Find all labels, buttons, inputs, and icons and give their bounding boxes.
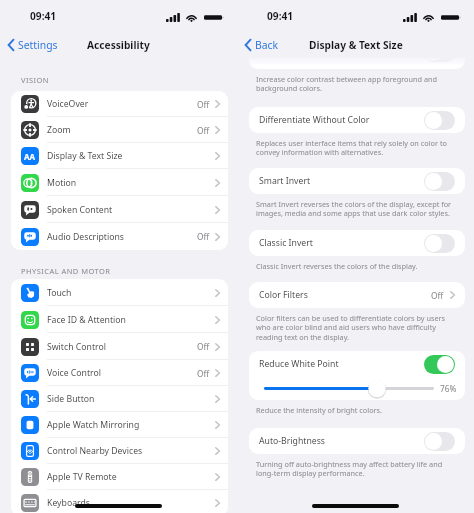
staticText: Classic Invert	[259, 237, 424, 249]
staticText: Differentiate Without Color	[259, 114, 424, 126]
staticText: Settings	[18, 38, 58, 52]
staticText: Off	[197, 125, 210, 136]
staticText: Off	[197, 99, 210, 110]
button[interactable]: Audio Descriptions	[11, 223, 228, 250]
staticText: VISION	[21, 75, 49, 85]
staticText: AA	[24, 151, 36, 162]
staticText: Color filters can be used to differentia…	[256, 313, 456, 343]
button[interactable]: Toggle	[424, 355, 455, 374]
staticText: Side Button	[47, 393, 95, 405]
staticText: Smart Invert reverses the colors of the …	[256, 199, 456, 219]
button[interactable]: Toggle	[424, 432, 455, 451]
staticText: Back	[255, 38, 279, 52]
staticText: Audio Descriptions	[47, 231, 124, 243]
button[interactable]: Differentiate Without Color	[249, 107, 465, 133]
button[interactable]: Zoom	[11, 117, 228, 143]
staticText: Classic Invert reverses the colors of th…	[256, 261, 418, 271]
button[interactable]: Keyboards	[11, 490, 228, 513]
staticText: Zoom	[47, 124, 71, 136]
button[interactable]: Toggle	[424, 58, 455, 62]
button[interactable]: Smart Invert	[249, 168, 465, 194]
button[interactable]: Switch Control	[11, 333, 228, 360]
staticText: Reduce White Point	[259, 358, 424, 370]
staticText: Smart Invert	[259, 175, 424, 187]
staticText: Control Nearby Devices	[47, 445, 143, 457]
staticText: Face ID & Attention	[47, 314, 126, 326]
button[interactable]: Color Filters	[249, 282, 465, 308]
staticText: Keyboards	[47, 497, 90, 509]
button[interactable]: Motion	[11, 169, 228, 196]
staticText: Display & Text Size	[47, 150, 123, 162]
button[interactable]: VoiceOver	[11, 91, 228, 117]
staticText: Spoken Content	[47, 204, 113, 216]
staticText: Apple Watch Mirroring	[47, 419, 140, 431]
staticText: Off	[431, 290, 444, 301]
staticText: PHYSICAL AND MOTOR	[21, 266, 111, 276]
staticText: Increase color contrast between app fore…	[256, 74, 456, 94]
button[interactable]: Control Nearby Devices	[11, 438, 228, 464]
button[interactable]: Back to Back	[243, 36, 281, 54]
button[interactable]: AA	[11, 143, 228, 169]
button[interactable]: Classic Invert	[249, 230, 465, 256]
button[interactable]: Back to Settings	[6, 36, 60, 54]
staticText: Color Filters	[259, 289, 431, 301]
staticText: Motion	[47, 177, 77, 189]
button[interactable]: White point level	[264, 379, 434, 398]
staticText: Switch Control	[47, 341, 106, 353]
button[interactable]: Face ID & Attention	[11, 306, 228, 333]
staticText: 09:41	[267, 9, 294, 23]
button[interactable]: Apple Watch Mirroring	[11, 412, 228, 438]
staticText: Replaces user interface items that rely …	[256, 138, 456, 158]
button[interactable]: Toggle	[424, 111, 455, 130]
button[interactable]: Touch	[11, 279, 228, 306]
button[interactable]: Auto-Brightness	[249, 428, 465, 454]
staticText: 09:41	[30, 9, 57, 23]
button[interactable]: Voice Control	[11, 360, 228, 386]
staticText: Off	[197, 231, 210, 242]
staticText: Off	[197, 341, 210, 352]
button[interactable]: Reduce White Point	[249, 351, 465, 377]
button[interactable]: Toggle	[424, 172, 455, 191]
button[interactable]: Side Button	[11, 386, 228, 412]
button[interactable]: Increase Contrast	[249, 58, 465, 65]
staticText: Display & Text Size	[309, 38, 403, 52]
staticText: Off	[197, 368, 210, 379]
staticText: Touch	[47, 287, 72, 299]
staticText: Apple TV Remote	[47, 471, 117, 483]
staticText: Voice Control	[47, 367, 102, 379]
staticText: 76%	[440, 383, 457, 394]
button[interactable]: Apple TV Remote	[11, 464, 228, 490]
staticText: VoiceOver	[47, 98, 89, 110]
staticText: Turning off auto-brightness may affect b…	[256, 459, 456, 479]
button[interactable]: Spoken Content	[11, 196, 228, 223]
button[interactable]: Toggle	[424, 234, 455, 253]
staticText: Accessibility	[87, 38, 150, 52]
staticText: Reduce the intensity of bright colors.	[256, 405, 383, 415]
staticText: Auto-Brightness	[259, 435, 424, 447]
